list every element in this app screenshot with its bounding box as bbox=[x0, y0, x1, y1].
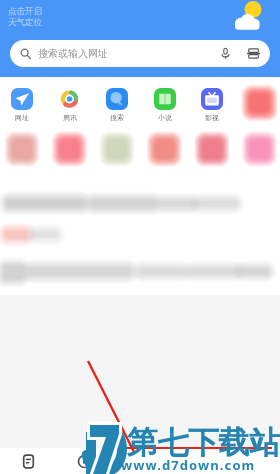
staticText: 小说 bbox=[158, 113, 172, 122]
button[interactable]: Home bbox=[112, 448, 168, 474]
staticText: 点击开启 bbox=[8, 6, 42, 17]
button[interactable]: Tabs bbox=[168, 448, 224, 474]
staticText: 腾讯 bbox=[63, 113, 77, 122]
button[interactable]: 小说 bbox=[149, 88, 181, 122]
button[interactable]: 腾讯 bbox=[54, 88, 86, 122]
button[interactable]: 搜索或输入网址 bbox=[10, 40, 270, 67]
button[interactable]: Voice search bbox=[219, 47, 232, 60]
staticText: 天气定位 bbox=[8, 17, 42, 28]
staticText: www.d7down.com bbox=[121, 456, 256, 474]
staticText: 第七下载站 bbox=[127, 423, 280, 462]
button[interactable]: Weather bbox=[233, 0, 263, 30]
staticText: 网址 bbox=[15, 113, 29, 122]
button[interactable]: 网址 bbox=[6, 88, 38, 122]
button[interactable]: 搜索 bbox=[101, 88, 133, 122]
button[interactable]: Bookmarks bbox=[0, 448, 56, 474]
button[interactable]: Menu bbox=[224, 448, 280, 474]
staticText: 影视 bbox=[205, 113, 219, 122]
staticText: 搜索或输入网址 bbox=[38, 47, 108, 60]
button[interactable]: Scan code bbox=[247, 47, 260, 60]
button[interactable]: Video bbox=[56, 448, 112, 474]
staticText: 搜索 bbox=[110, 113, 124, 122]
button[interactable]: 影视 bbox=[196, 88, 228, 122]
